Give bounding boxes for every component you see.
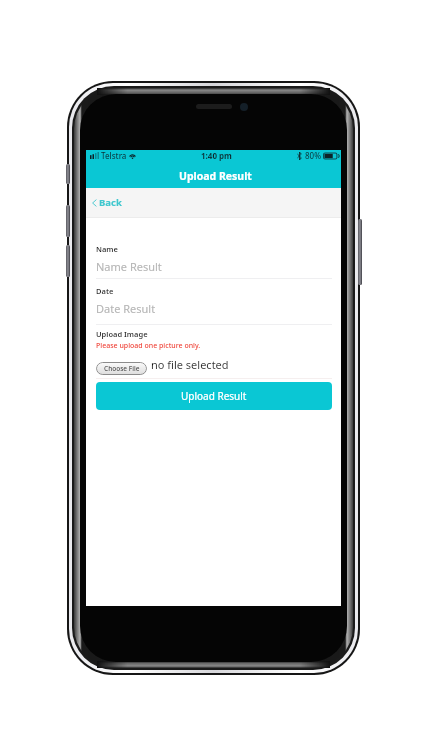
staticText: Date: [96, 286, 114, 296]
staticText: Telstra: [101, 150, 127, 161]
staticText: Back: [99, 196, 122, 209]
button[interactable]: Name Result: [96, 259, 332, 274]
staticText: Choose File: [104, 364, 140, 373]
staticText: 80%: [305, 150, 321, 161]
button[interactable]: Date Result: [96, 301, 332, 316]
button[interactable]: Upload Result: [96, 382, 332, 410]
staticText: Name: [96, 244, 118, 254]
button[interactable]: Back: [86, 188, 341, 217]
staticText: Name Result: [96, 259, 162, 274]
staticText: Please upload one picture only.: [96, 341, 201, 351]
staticText: no file selected: [151, 357, 229, 372]
staticText: Upload Result: [179, 169, 252, 183]
button[interactable]: Choose File: [96, 362, 147, 375]
staticText: 1:40 pm: [201, 150, 232, 161]
staticText: Upload Result: [181, 389, 247, 403]
staticText: Upload Image: [96, 329, 148, 339]
staticText: Date Result: [96, 301, 156, 316]
